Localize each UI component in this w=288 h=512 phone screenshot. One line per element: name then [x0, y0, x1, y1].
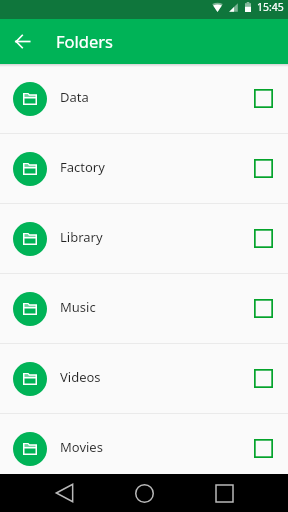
button[interactable]: Data: [0, 64, 288, 133]
staticText: Folders: [56, 30, 113, 52]
button[interactable]: Factory: [0, 134, 288, 203]
button[interactable]: Select Music: [243, 289, 283, 329]
button[interactable]: Home: [104, 474, 184, 512]
staticText: Library: [60, 228, 103, 246]
button[interactable]: Select Videos: [243, 359, 283, 399]
staticText: Music: [60, 298, 96, 316]
button[interactable]: Back: [0, 19, 45, 64]
button[interactable]: Select Library: [243, 219, 283, 259]
staticText: Factory: [60, 158, 105, 176]
button[interactable]: Recent apps: [184, 474, 264, 512]
button[interactable]: Library: [0, 204, 288, 273]
button[interactable]: Videos: [0, 344, 288, 413]
staticText: Videos: [60, 368, 101, 386]
staticText: Movies: [60, 438, 103, 456]
button[interactable]: Movies: [0, 414, 288, 474]
button[interactable]: Select Movies: [243, 429, 283, 469]
button[interactable]: Select Factory: [243, 149, 283, 189]
button[interactable]: Back: [24, 474, 104, 512]
button[interactable]: Music: [0, 274, 288, 343]
staticText: 15:45: [257, 0, 284, 14]
staticText: Data: [60, 88, 89, 106]
button[interactable]: Select Data: [243, 79, 283, 119]
